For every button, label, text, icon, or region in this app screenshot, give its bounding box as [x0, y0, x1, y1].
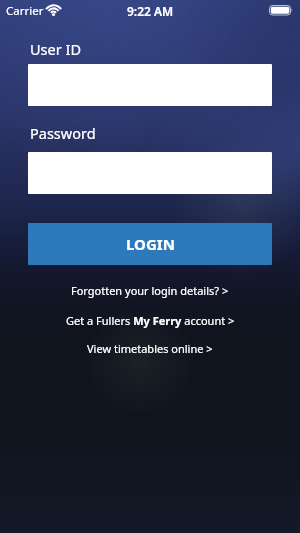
staticText: Get a Fullers My Ferry account > — [66, 313, 235, 328]
staticText: View timetables online > — [87, 341, 213, 356]
staticText: User ID — [30, 39, 81, 59]
staticText: LOGIN — [126, 234, 175, 254]
button[interactable]: View timetables online > — [87, 341, 213, 356]
staticText: Forgotten your login details? > — [71, 283, 229, 298]
button[interactable]: LOGIN — [28, 223, 272, 265]
staticText: Password — [30, 123, 96, 143]
staticText: 9:22 AM — [127, 3, 174, 19]
staticText: Carrier — [6, 3, 44, 19]
button[interactable]: Forgotten your login details? > — [71, 283, 229, 298]
button[interactable]: Get a Fullers My Ferry account > — [66, 313, 235, 328]
